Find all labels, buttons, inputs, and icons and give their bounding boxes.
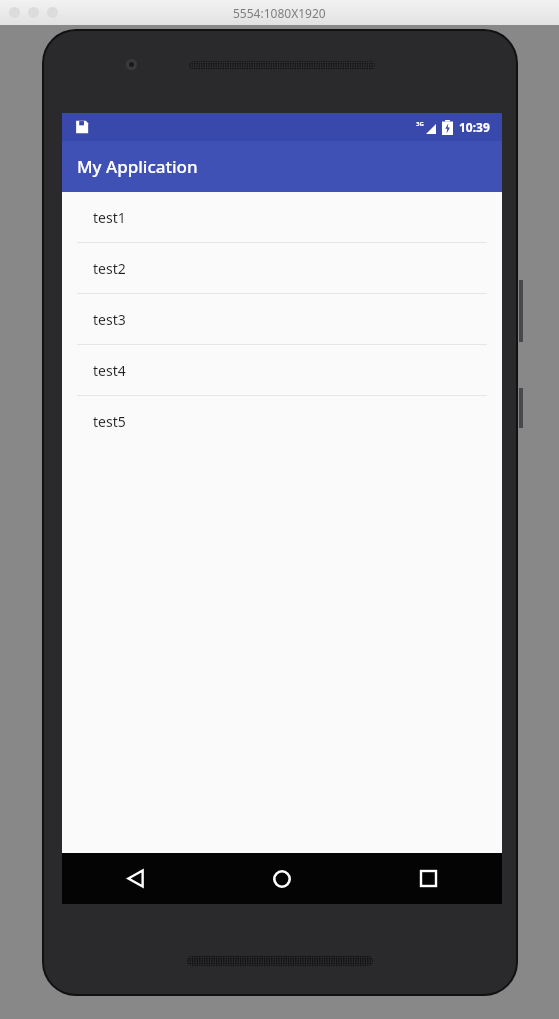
staticText: 10:39 [459,119,490,135]
other: Storage [75,120,89,134]
staticText: My Application [77,155,198,178]
staticText: test3 [93,310,126,329]
staticText: test5 [93,412,126,431]
staticText: test1 [93,208,126,227]
staticText: test4 [93,361,126,380]
button[interactable]: Home [208,853,355,904]
staticText: test2 [93,259,126,278]
button[interactable]: test1 [62,192,502,242]
button[interactable]: test4 [62,345,502,395]
button[interactable]: Back [62,853,208,904]
button[interactable]: test3 [62,294,502,344]
button[interactable]: Window control [47,7,58,18]
button[interactable]: Recent apps [355,853,502,904]
button[interactable]: test5 [62,396,502,446]
staticText: 5554:1080X1920 [233,5,326,21]
staticText: 3G [416,120,424,128]
button[interactable]: test2 [62,243,502,293]
button[interactable]: Window control [28,7,39,18]
button[interactable]: Window control [9,7,20,18]
